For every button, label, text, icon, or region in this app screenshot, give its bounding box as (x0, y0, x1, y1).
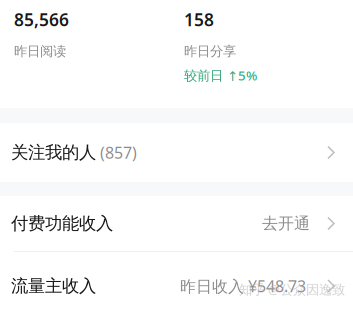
staticText: 昨日分享 (184, 43, 236, 59)
staticText: 知乎 @公众因逸致 (239, 280, 345, 298)
staticText: (857) (100, 142, 137, 163)
staticText: 去开通 (262, 214, 310, 233)
staticText: 付费功能收入 (11, 213, 113, 234)
staticText: 较前日 ↑5% (184, 66, 257, 84)
staticText: 85,566 (14, 8, 69, 31)
staticText: 关注我的人 (11, 142, 96, 163)
staticText: 流量主收入 (11, 275, 96, 297)
button[interactable]: 关注我的人 (0, 123, 353, 182)
staticText: 昨日阅读 (14, 43, 66, 59)
staticText: 158 (184, 8, 214, 31)
button[interactable]: 流量主收入 (0, 252, 353, 309)
staticText: 昨日收入 ¥548.73 (180, 275, 306, 297)
button[interactable]: 付费功能收入 (0, 196, 353, 251)
